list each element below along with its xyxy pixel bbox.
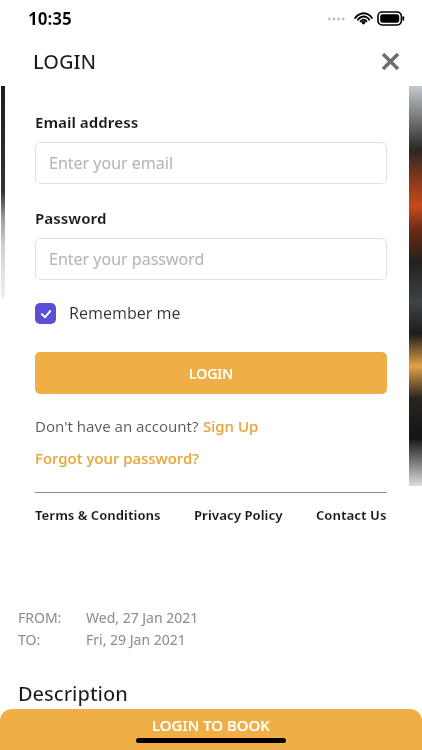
button[interactable]: LOGIN: [35, 352, 387, 394]
staticText: Privacy Policy: [194, 506, 283, 524]
button[interactable]: Remember me: [35, 302, 181, 324]
button[interactable]: Sign Up: [203, 416, 259, 436]
staticText: Wed, 27 Jan 2021: [86, 608, 199, 627]
staticText: Description: [18, 680, 128, 707]
staticText: FROM:: [18, 608, 62, 627]
staticText: Enter your email: [49, 152, 174, 174]
button[interactable]: Enter your password: [35, 238, 387, 280]
button[interactable]: LOGIN TO BOOK: [0, 709, 422, 750]
button[interactable]: Enter your email: [35, 142, 387, 184]
staticText: Don't have an account?: [35, 416, 203, 436]
staticText: 10:35: [28, 7, 72, 30]
staticText: Sign Up: [203, 416, 259, 436]
staticText: Forgot your password?: [35, 448, 199, 468]
staticText: TO:: [18, 630, 41, 649]
staticText: LOGIN TO BOOK: [152, 715, 270, 735]
button[interactable]: Privacy Policy: [194, 506, 283, 524]
staticText: Enter your password: [49, 248, 205, 270]
staticText: Remember me: [69, 302, 181, 324]
button[interactable]: Close: [372, 43, 408, 79]
staticText: Fri, 29 Jan 2021: [86, 630, 186, 649]
staticText: Contact Us: [316, 506, 387, 524]
button[interactable]: Forgot your password?: [35, 448, 199, 468]
staticText: Password: [35, 208, 107, 228]
staticText: LOGIN: [33, 48, 97, 75]
staticText: Email address: [35, 112, 139, 132]
staticText: LOGIN: [189, 364, 234, 383]
staticText: Terms & Conditions: [35, 506, 161, 524]
button[interactable]: Terms & Conditions: [35, 506, 161, 524]
button[interactable]: Contact Us: [316, 506, 387, 524]
